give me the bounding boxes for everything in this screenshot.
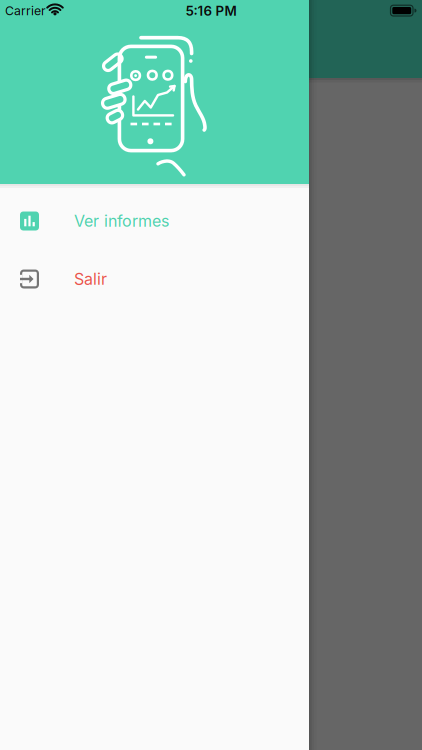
staticText: Ver informes: [74, 211, 169, 231]
button[interactable]: Salir: [0, 250, 309, 307]
staticText: Carrier: [5, 3, 46, 18]
button[interactable]: Ver informes: [0, 192, 309, 249]
staticText: Salir: [74, 269, 107, 289]
staticText: 5:16 PM: [185, 3, 236, 19]
